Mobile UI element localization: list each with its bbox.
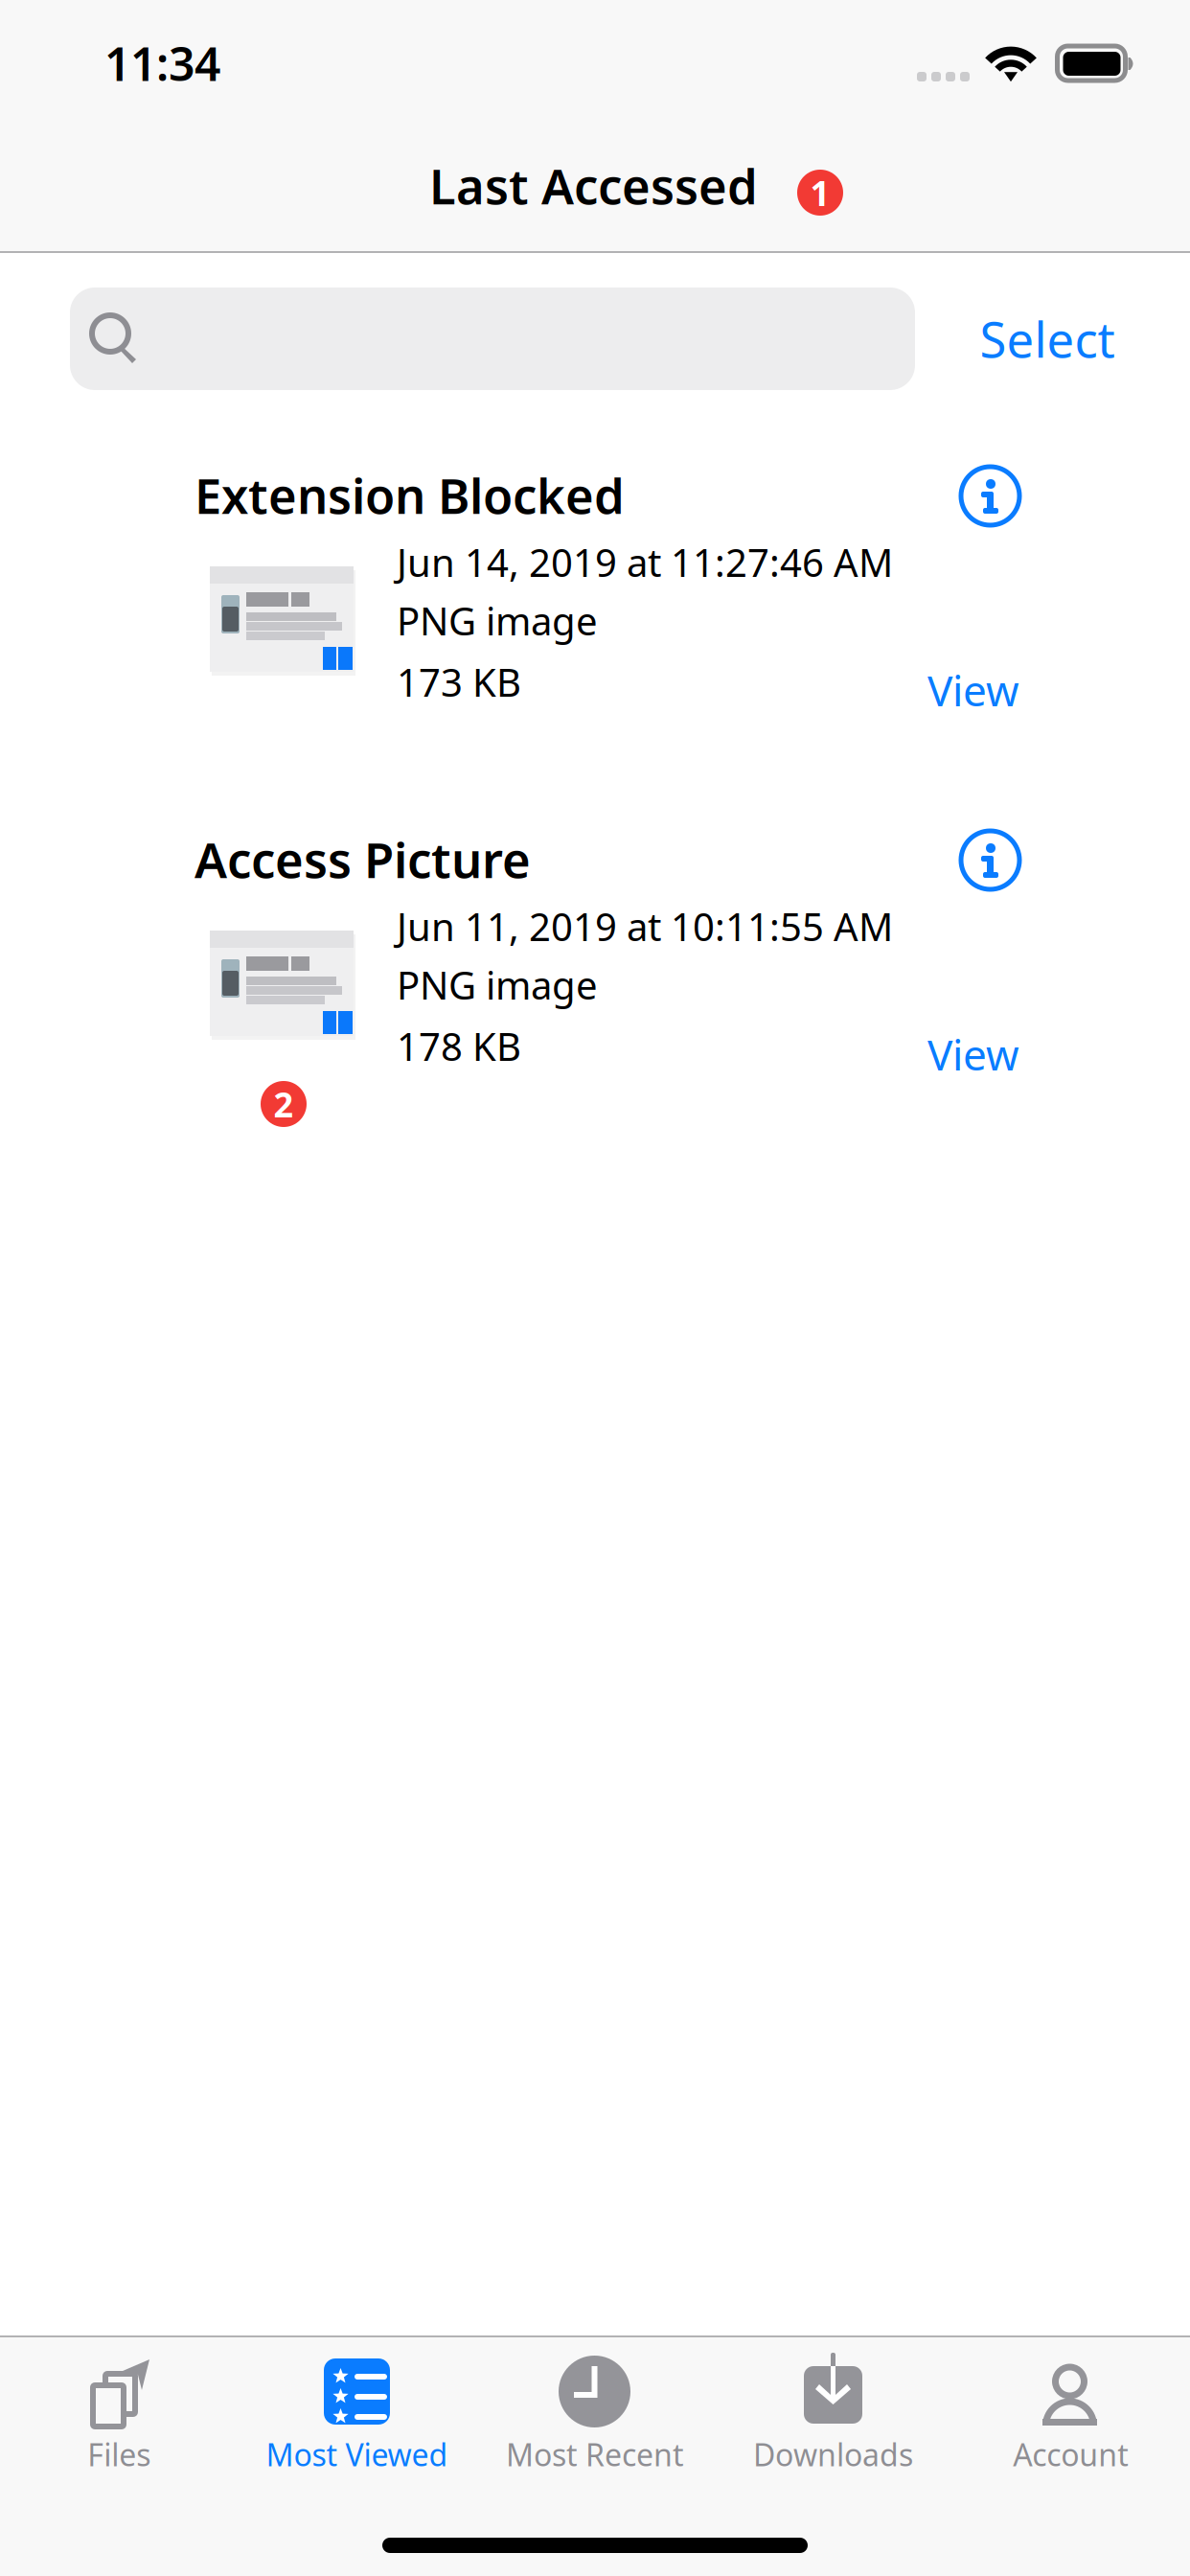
staticText: 178 KB bbox=[397, 1021, 521, 1072]
button[interactable]: Most Recent bbox=[476, 2337, 714, 2476]
button[interactable]: Files bbox=[0, 2337, 238, 2476]
staticText: 1 bbox=[810, 170, 830, 216]
staticText: PNG image bbox=[397, 959, 598, 1010]
staticText: Extension Blocked bbox=[195, 463, 625, 527]
staticText: Jun 14, 2019 at 11:27:46 AM bbox=[397, 537, 893, 588]
staticText: Jun 11, 2019 at 10:11:55 AM bbox=[397, 901, 893, 952]
staticText: 173 KB bbox=[397, 656, 521, 707]
staticText: Downloads bbox=[753, 2434, 913, 2475]
staticText: Last Accessed bbox=[429, 153, 758, 218]
staticText: Account bbox=[1013, 2434, 1129, 2475]
button[interactable]: Downloads bbox=[714, 2337, 952, 2476]
staticText: Files bbox=[87, 2434, 151, 2475]
staticText: Most Recent bbox=[506, 2434, 684, 2475]
staticText: Access Picture bbox=[195, 827, 531, 892]
button[interactable]: View bbox=[904, 1025, 1019, 1083]
staticText: View bbox=[927, 662, 1019, 718]
staticText: PNG image bbox=[397, 595, 598, 646]
staticText: View bbox=[927, 1026, 1019, 1082]
staticText: Most Viewed bbox=[266, 2434, 448, 2475]
button[interactable]: Account bbox=[952, 2337, 1190, 2476]
button[interactable]: View bbox=[904, 661, 1019, 719]
staticText: Select bbox=[980, 307, 1115, 371]
staticText: 2 bbox=[274, 1081, 294, 1127]
button[interactable]: Select bbox=[961, 287, 1133, 390]
button[interactable]: Information bbox=[957, 463, 1019, 525]
button[interactable]: Most Viewed bbox=[238, 2337, 476, 2476]
staticText: 11:34 bbox=[104, 33, 220, 94]
button[interactable]: Information bbox=[957, 827, 1019, 889]
